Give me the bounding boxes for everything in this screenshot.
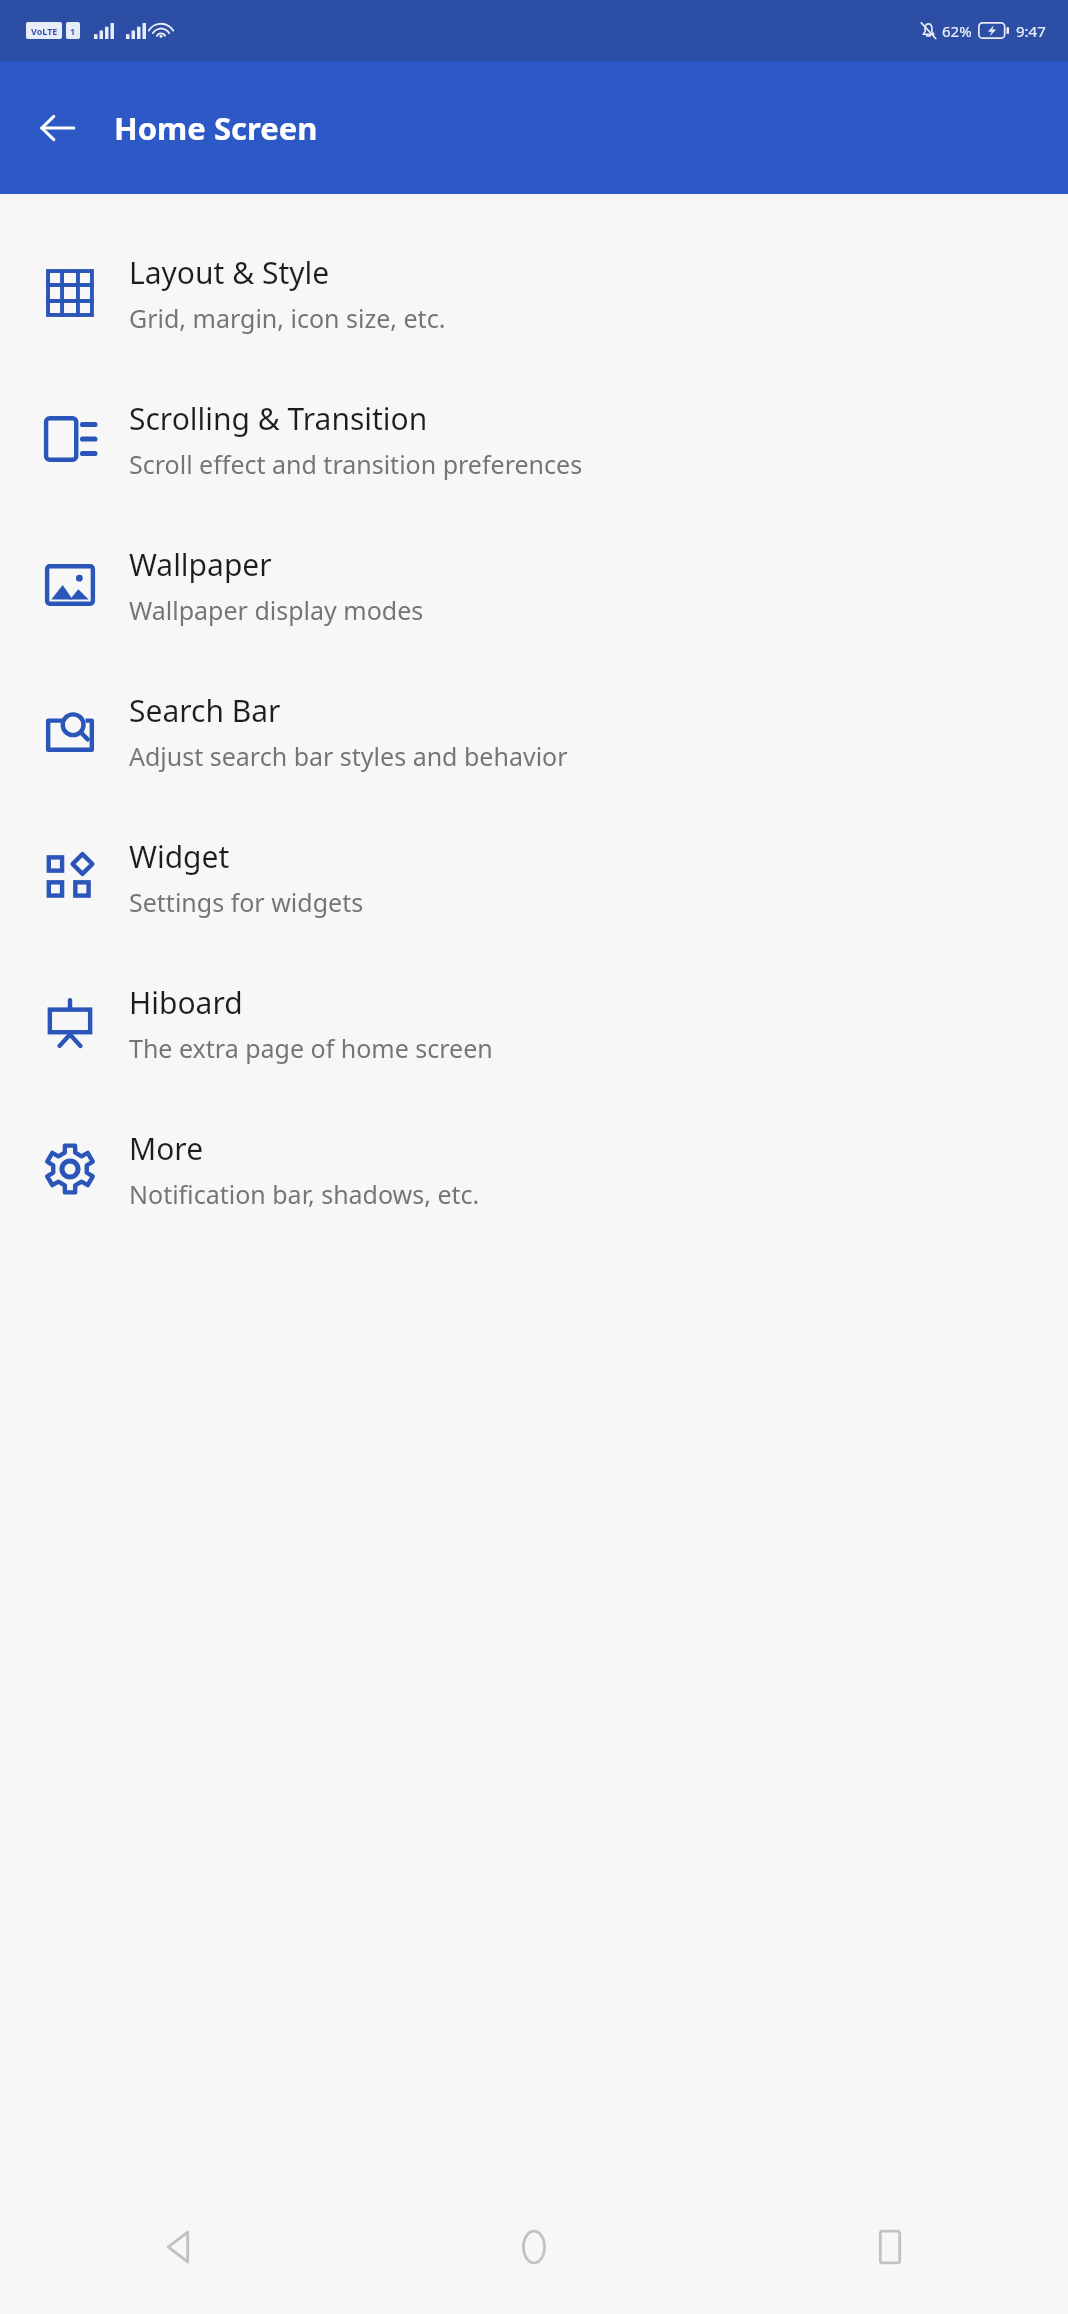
staticText: Notification bar, shadows, etc.	[129, 1177, 480, 1211]
button[interactable]: Search Bar	[0, 658, 1068, 804]
button[interactable]: Layout & Style	[0, 220, 1068, 366]
staticText: Home Screen	[114, 107, 318, 149]
button[interactable]: Widget	[0, 804, 1068, 950]
button[interactable]: Back	[0, 2180, 356, 2314]
staticText: 1	[70, 25, 76, 37]
staticText: Wallpaper	[129, 544, 272, 585]
button[interactable]: Back	[26, 97, 88, 159]
staticText: Settings for widgets	[129, 885, 364, 919]
button[interactable]: Hiboard	[0, 950, 1068, 1096]
staticText: 9:47	[1016, 21, 1046, 41]
button[interactable]: Recent apps	[712, 2180, 1068, 2314]
staticText: Adjust search bar styles and behavior	[129, 739, 568, 773]
button[interactable]: Scrolling & Transition	[0, 366, 1068, 512]
staticText: The extra page of home screen	[129, 1031, 493, 1065]
staticText: Layout & Style	[129, 252, 330, 293]
staticText: Wallpaper display modes	[129, 593, 424, 627]
staticText: More	[129, 1128, 204, 1169]
button[interactable]: More	[0, 1096, 1068, 1242]
staticText: VoLTE	[31, 25, 58, 37]
staticText: Widget	[129, 836, 230, 877]
staticText: Hiboard	[129, 982, 243, 1023]
button[interactable]: Wallpaper	[0, 512, 1068, 658]
staticText: Grid, margin, icon size, etc.	[129, 301, 446, 335]
staticText: Search Bar	[129, 690, 281, 731]
staticText: Scrolling & Transition	[129, 398, 428, 439]
button[interactable]: Home	[356, 2180, 712, 2314]
staticText: 62%	[942, 21, 972, 41]
staticText: Scroll effect and transition preferences	[129, 447, 583, 481]
